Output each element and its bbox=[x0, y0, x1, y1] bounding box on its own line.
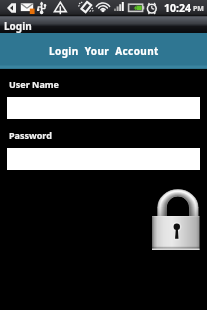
other: Locked bbox=[150, 186, 204, 254]
staticText: Login bbox=[4, 19, 32, 33]
staticText: PM bbox=[193, 4, 204, 14]
staticText: 10:24 bbox=[164, 1, 191, 15]
staticText: User Name bbox=[9, 78, 59, 90]
staticText: Password bbox=[9, 129, 52, 141]
staticText: Login Your Account bbox=[49, 44, 159, 58]
